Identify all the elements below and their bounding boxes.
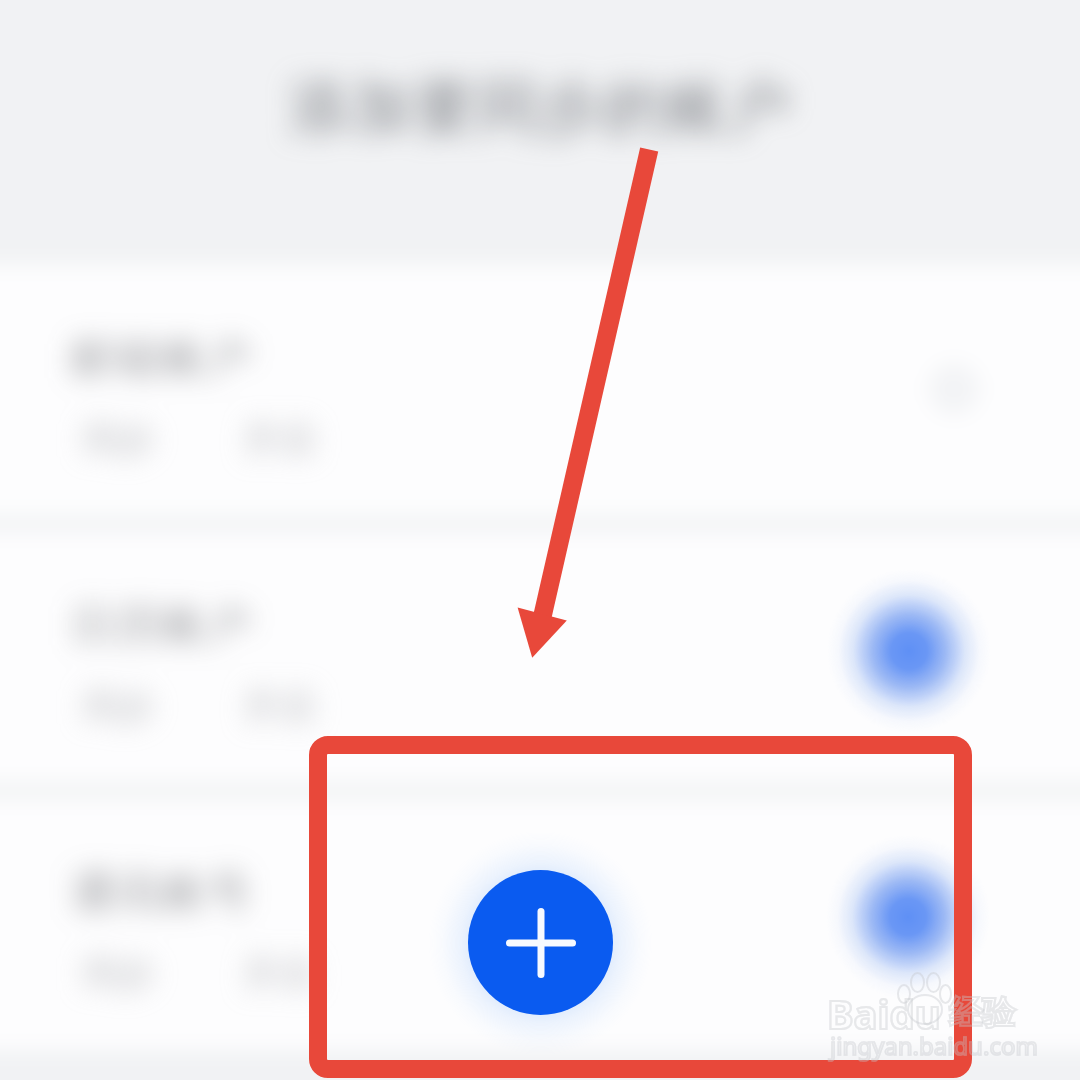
staticText: Baidu	[827, 986, 941, 1040]
staticText: 同步	[83, 417, 155, 462]
staticText: 经验	[949, 992, 1015, 1034]
button[interactable]	[0, 799, 1080, 1050]
button[interactable]: Add account	[468, 870, 613, 1015]
button[interactable]: Toggle sync	[0, 265, 1080, 516]
staticText: 通讯账号	[70, 865, 252, 920]
staticText: 添加要同步的账户	[289, 69, 792, 147]
staticText: 开启	[243, 684, 315, 729]
staticText: 开启	[243, 951, 315, 996]
button[interactable]	[0, 532, 1080, 783]
staticText: jingyan.baidu.com	[830, 1029, 1038, 1062]
staticText: 开启	[243, 417, 315, 462]
staticText: 邮箱账户	[70, 331, 252, 386]
staticText: 同步	[83, 684, 155, 729]
staticText: 日历账户	[70, 598, 252, 653]
staticText: 同步	[83, 951, 155, 996]
